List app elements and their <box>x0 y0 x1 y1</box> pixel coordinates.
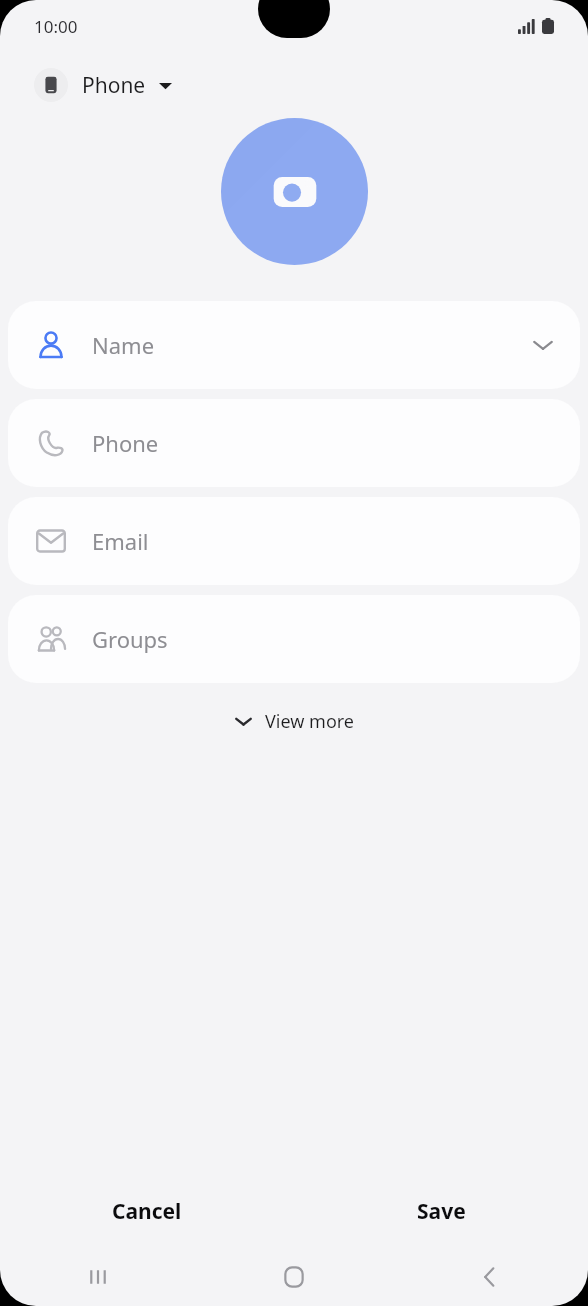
staticText: View more <box>265 709 355 734</box>
staticText: Cancel <box>112 1197 182 1226</box>
button[interactable]: Phone <box>8 399 580 487</box>
staticText: Phone <box>92 428 159 458</box>
button[interactable]: Home <box>196 1248 392 1306</box>
button[interactable]: View more <box>218 701 371 742</box>
staticText: Save <box>417 1197 466 1226</box>
button[interactable]: Cancel <box>0 1174 294 1248</box>
button[interactable]: Email <box>8 497 580 585</box>
button[interactable]: Phone <box>26 62 180 108</box>
staticText: Email <box>92 526 149 556</box>
button[interactable]: Add contact photo <box>221 118 368 265</box>
staticText: 10:00 <box>34 15 78 38</box>
button[interactable]: Back <box>392 1248 588 1306</box>
staticText: Phone <box>82 71 146 100</box>
button[interactable]: Groups <box>8 595 580 683</box>
button[interactable]: Recents <box>0 1248 196 1306</box>
button[interactable]: Save <box>294 1174 588 1248</box>
staticText: Name <box>92 330 155 360</box>
button[interactable]: Name <box>8 301 580 389</box>
staticText: Groups <box>92 624 168 654</box>
